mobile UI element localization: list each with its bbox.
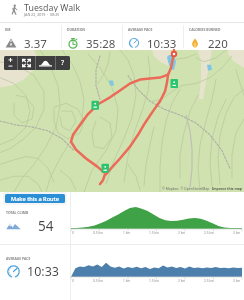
- staticText: 220: [208, 36, 228, 50]
- staticText: 3 km: [233, 279, 241, 283]
- staticText: 54: [38, 217, 54, 235]
- staticText: 1.5 km: [149, 279, 160, 283]
- button[interactable]: CALORIES BURNED: [184, 23, 244, 50]
- staticText: KM: [5, 27, 11, 32]
- staticText: JAN 22, 2019 · 08:25: [24, 12, 60, 17]
- staticText: 2 km: [178, 231, 186, 235]
- staticText: Tuesday Walk: [24, 2, 81, 12]
- staticText: 3 km: [233, 231, 241, 235]
- staticText: 35:28: [86, 36, 116, 50]
- staticText: 2 km: [178, 279, 186, 283]
- button[interactable]: Zoom: [4, 56, 17, 70]
- staticText: 3.37: [24, 36, 47, 50]
- button[interactable]: KM: [0, 23, 61, 50]
- staticText: Improve this map: [212, 186, 242, 191]
- staticText: 0.5 km: [93, 279, 104, 283]
- staticText: 10:33: [27, 263, 59, 280]
- staticText: 1 km: [123, 231, 131, 235]
- staticText: AVERAGE PACE: [6, 256, 31, 261]
- staticText: 1.5 km: [149, 231, 160, 235]
- staticText: CALORIES BURNED: [189, 27, 221, 32]
- button[interactable]: Tuesday Walk: [0, 0, 244, 22]
- button[interactable]: AVERAGE PACE: [0, 245, 70, 300]
- staticText: DURATION: [67, 27, 86, 32]
- staticText: TOTAL CLIMB: [6, 210, 29, 215]
- button[interactable]: TOTAL CLIMB: [0, 192, 70, 244]
- staticText: 0: [72, 231, 74, 235]
- staticText: Make this a Route: [11, 195, 59, 203]
- button[interactable]: DURATION: [62, 23, 122, 50]
- staticText: 2.5 km: [204, 279, 215, 283]
- button[interactable]: Help: [56, 56, 70, 70]
- button[interactable]: Map: [0, 50, 244, 192]
- staticText: AVERAGE PACE: [128, 27, 153, 32]
- button[interactable]: AVERAGE PACE: [123, 23, 183, 50]
- staticText: 0.5 km: [93, 231, 104, 235]
- staticText: 10:33: [147, 36, 177, 50]
- button[interactable]: Fullscreen: [18, 56, 35, 70]
- button[interactable]: Terrain: [36, 56, 55, 70]
- staticText: 1 km: [123, 279, 131, 283]
- staticText: ?: [61, 58, 65, 68]
- staticText: 0: [72, 279, 74, 283]
- staticText: 2.5 km: [204, 231, 215, 235]
- staticText: © Mapbox © OpenStreetMap: [162, 186, 212, 191]
- button[interactable]: Make this a Route: [5, 194, 65, 203]
